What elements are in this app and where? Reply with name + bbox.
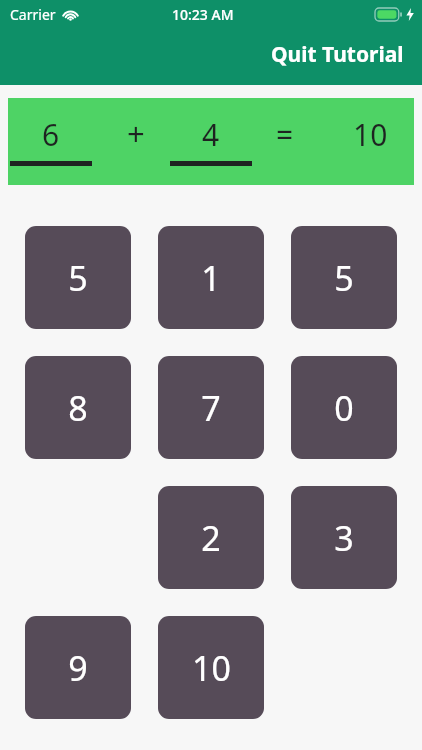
staticText: 8	[68, 385, 88, 431]
staticText: 6	[42, 114, 60, 155]
staticText: +	[127, 112, 145, 154]
button[interactable]: 0	[291, 356, 397, 459]
staticText: 10:23 AM	[172, 5, 234, 24]
staticText: 3	[334, 515, 354, 561]
staticText: =	[276, 114, 294, 155]
button[interactable]: 5	[25, 226, 131, 329]
staticText: 10	[353, 114, 388, 155]
staticText: 7	[201, 385, 221, 431]
other: Charging	[406, 8, 414, 21]
other: Wi-Fi signal	[62, 8, 79, 21]
other: Battery charging	[375, 8, 402, 21]
button[interactable]: 6	[10, 114, 92, 176]
button[interactable]: 4	[170, 114, 252, 176]
button[interactable]: 7	[158, 356, 264, 459]
staticText: 9	[68, 645, 88, 691]
button[interactable]: 2	[158, 486, 264, 589]
staticText: Quit Tutorial	[271, 40, 404, 69]
staticText: 10	[192, 645, 231, 691]
staticText: 5	[68, 255, 88, 301]
button[interactable]: 5	[291, 226, 397, 329]
staticText: 0	[334, 385, 354, 431]
button[interactable]: 10	[158, 616, 264, 719]
staticText: Carrier	[10, 5, 56, 24]
button[interactable]: 1	[158, 226, 264, 329]
button[interactable]: 3	[291, 486, 397, 589]
staticText: 4	[202, 114, 220, 155]
button[interactable]: Quit Tutorial	[267, 38, 408, 71]
staticText: 1	[201, 255, 221, 301]
button[interactable]: 9	[25, 616, 131, 719]
staticText: 5	[334, 255, 354, 301]
staticText: 2	[201, 515, 221, 561]
button[interactable]: 8	[25, 356, 131, 459]
